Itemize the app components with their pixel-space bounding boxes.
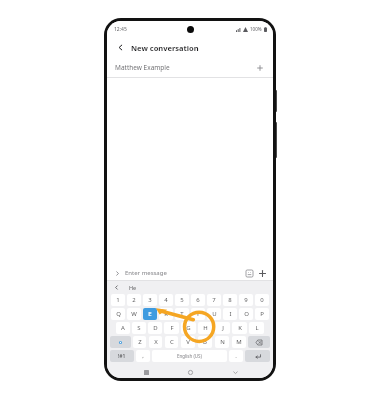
staticText: L bbox=[255, 324, 259, 332]
button[interactable]: M bbox=[232, 336, 246, 348]
button[interactable]: Shift bbox=[110, 336, 131, 348]
button[interactable]: !#1 bbox=[110, 350, 134, 362]
staticText: , bbox=[142, 352, 144, 360]
button[interactable]: 8 bbox=[223, 294, 237, 306]
button[interactable]: L bbox=[249, 322, 264, 334]
staticText: 100% bbox=[250, 26, 262, 32]
button[interactable]: D bbox=[148, 322, 162, 334]
staticText: New conversation bbox=[131, 43, 199, 53]
button[interactable]: Matthew Example bbox=[115, 58, 265, 77]
staticText: English (US) bbox=[177, 353, 202, 359]
button[interactable]: He bbox=[129, 284, 137, 291]
button[interactable]: Expand bbox=[112, 268, 122, 278]
staticText: H bbox=[203, 324, 208, 332]
button[interactable]: 3 bbox=[143, 294, 157, 306]
staticText: A bbox=[121, 324, 125, 332]
button[interactable]: F bbox=[164, 322, 179, 334]
staticText: T bbox=[180, 310, 184, 318]
button[interactable]: 5 bbox=[175, 294, 189, 306]
button[interactable]: Z bbox=[133, 336, 146, 348]
staticText: Z bbox=[138, 338, 142, 346]
button[interactable]: K bbox=[232, 322, 247, 334]
button[interactable]: More suggestions bbox=[112, 283, 121, 292]
staticText: 2 bbox=[132, 296, 136, 304]
staticText: K bbox=[238, 324, 242, 332]
button[interactable]: Back bbox=[114, 41, 127, 54]
button[interactable]: C bbox=[165, 336, 178, 348]
staticText: 8 bbox=[228, 296, 232, 304]
button[interactable]: 9 bbox=[239, 294, 253, 306]
staticText: V bbox=[186, 338, 190, 346]
staticText: I bbox=[229, 310, 232, 318]
button[interactable]: Q bbox=[111, 308, 125, 320]
button[interactable]: Emoji bbox=[244, 268, 255, 279]
button[interactable]: Backspace bbox=[248, 336, 270, 348]
button[interactable]: A bbox=[116, 322, 130, 334]
button[interactable]: H bbox=[198, 322, 213, 334]
button[interactable]: R bbox=[159, 308, 173, 320]
staticText: G bbox=[186, 324, 191, 332]
staticText: Q bbox=[116, 310, 121, 318]
staticText: C bbox=[170, 338, 174, 346]
button[interactable]: P bbox=[255, 308, 269, 320]
staticText: Enter message bbox=[125, 269, 167, 277]
staticText: P bbox=[260, 310, 264, 318]
button[interactable]: 2 bbox=[127, 294, 141, 306]
staticText: !#1 bbox=[118, 353, 126, 360]
button[interactable]: N bbox=[215, 336, 229, 348]
button[interactable]: V bbox=[181, 336, 195, 348]
button[interactable]: Enter message bbox=[125, 269, 244, 277]
button[interactable]: G bbox=[181, 322, 196, 334]
staticText: F bbox=[170, 324, 174, 332]
button[interactable]: 0 bbox=[255, 294, 269, 306]
button[interactable]: O bbox=[239, 308, 253, 320]
button[interactable]: 4 bbox=[159, 294, 173, 306]
staticText: D bbox=[153, 324, 158, 332]
button[interactable]: . bbox=[229, 350, 243, 362]
button[interactable]: B bbox=[198, 336, 212, 348]
staticText: E bbox=[148, 310, 152, 318]
button[interactable]: W bbox=[127, 308, 141, 320]
button[interactable]: Add attachment bbox=[257, 268, 268, 279]
staticText: X bbox=[154, 338, 158, 346]
staticText: S bbox=[137, 324, 141, 332]
staticText: 4 bbox=[164, 296, 168, 304]
button[interactable]: Y bbox=[191, 308, 205, 320]
button[interactable]: X bbox=[149, 336, 162, 348]
button[interactable]: Space bbox=[152, 350, 227, 362]
staticText: 0 bbox=[260, 296, 264, 304]
button[interactable]: 7 bbox=[207, 294, 221, 306]
button[interactable]: E bbox=[143, 308, 157, 320]
staticText: J bbox=[222, 324, 224, 332]
staticText: B bbox=[203, 338, 207, 346]
staticText: He bbox=[129, 284, 137, 291]
button[interactable]: Home bbox=[184, 366, 196, 378]
button[interactable]: Enter bbox=[245, 350, 270, 362]
staticText: R bbox=[164, 310, 168, 318]
staticText: M bbox=[236, 338, 242, 346]
button[interactable]: U bbox=[207, 308, 221, 320]
staticText: U bbox=[212, 310, 217, 318]
button[interactable]: 1 bbox=[111, 294, 125, 306]
staticText: Y bbox=[196, 310, 200, 318]
staticText: . bbox=[235, 352, 237, 360]
staticText: 1 bbox=[116, 296, 120, 304]
staticText: N bbox=[220, 338, 225, 346]
button[interactable]: Back bbox=[229, 366, 241, 378]
staticText: 7 bbox=[212, 296, 216, 304]
staticText: 3 bbox=[148, 296, 152, 304]
button[interactable]: I bbox=[223, 308, 237, 320]
staticText: 9 bbox=[244, 296, 248, 304]
button[interactable]: T bbox=[175, 308, 189, 320]
button[interactable]: S bbox=[132, 322, 146, 334]
staticText: 6 bbox=[196, 296, 200, 304]
staticText: 5 bbox=[180, 296, 184, 304]
staticText: W bbox=[131, 310, 137, 318]
button[interactable]: 6 bbox=[191, 294, 205, 306]
staticText: 12:45 bbox=[114, 26, 127, 33]
button[interactable]: J bbox=[215, 322, 230, 334]
button[interactable]: Add recipient bbox=[254, 62, 265, 73]
button[interactable]: , bbox=[136, 350, 150, 362]
button[interactable]: Recents bbox=[140, 366, 152, 378]
staticText: O bbox=[244, 310, 249, 318]
